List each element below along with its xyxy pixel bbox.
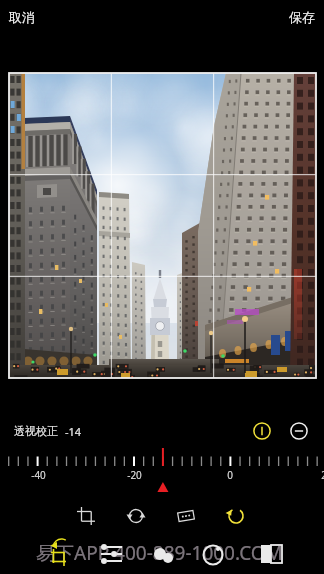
staticText: 透视校正 [14,424,58,438]
staticText: -40 [31,468,46,482]
button[interactable]: Reset [219,499,253,533]
staticText: -14 [65,424,82,439]
button[interactable]: Compare original [249,418,275,444]
button[interactable]: Crop [69,499,103,533]
staticText: 取消 [9,9,35,25]
button[interactable]: Rotate [119,499,153,533]
staticText: 0 [227,468,233,482]
button[interactable]: Perspective [169,499,203,533]
button[interactable]: Hide panel [286,418,312,444]
staticText: 易下APP 400-889-1000.COM [36,540,283,566]
button[interactable]: 保存 [280,2,324,32]
staticText: 保存 [289,9,315,25]
button[interactable]: 取消 [0,2,44,32]
staticText: 20 [321,468,324,482]
staticText: -20 [127,468,142,482]
